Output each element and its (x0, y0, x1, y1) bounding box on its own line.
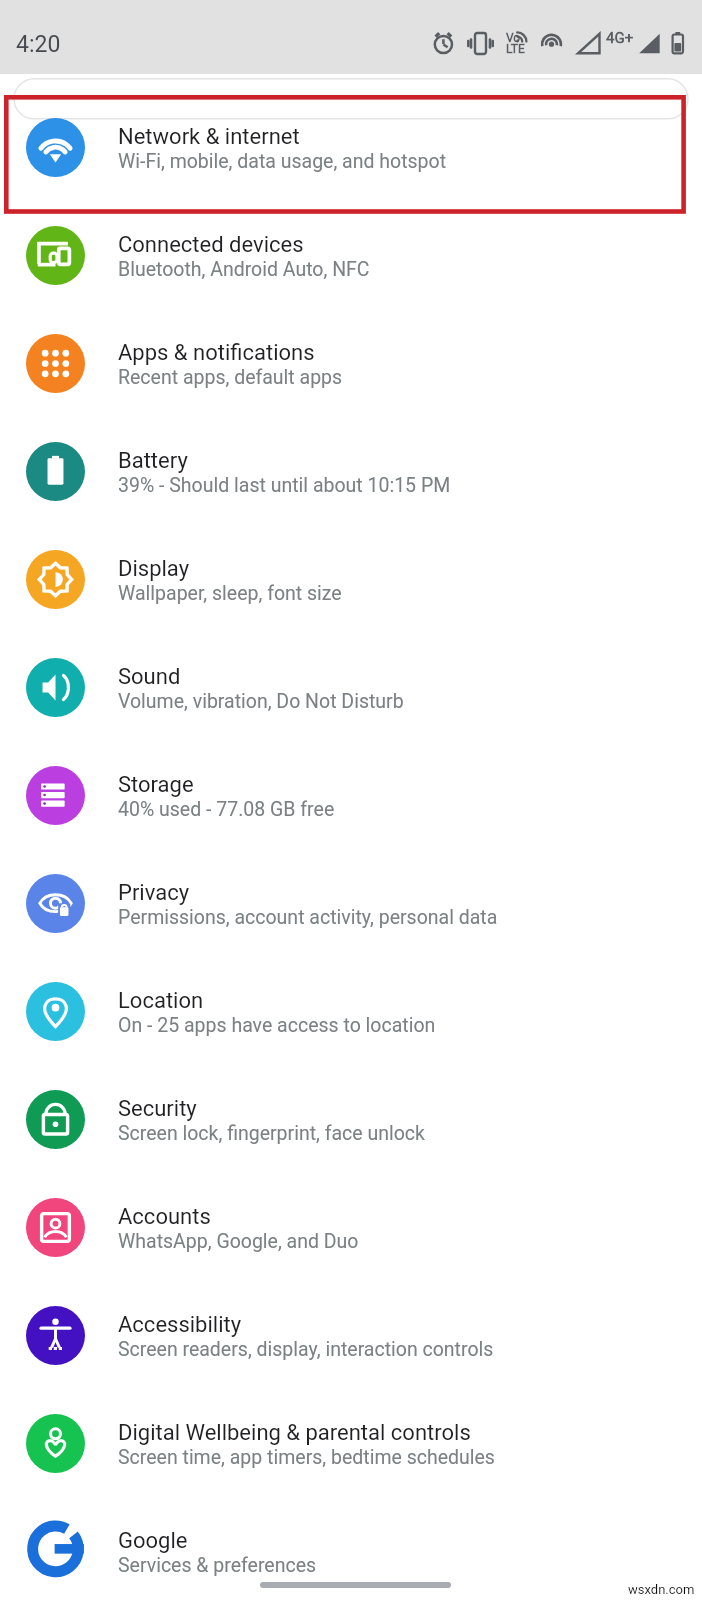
staticText: 4:20 (16, 31, 61, 58)
staticText: Services & preferences (118, 1554, 317, 1577)
staticText: Security (118, 1096, 197, 1122)
staticText: Network & internet (118, 124, 300, 150)
staticText: Privacy (118, 880, 190, 906)
staticText: Permissions, account activity, personal … (118, 906, 498, 929)
button[interactable]: Location (0, 959, 702, 1067)
staticText: Accessibility (118, 1312, 242, 1338)
staticText: Wi-Fi, mobile, data usage, and hotspot (118, 150, 447, 173)
button[interactable]: Apps & notifications (0, 311, 702, 419)
button[interactable]: Privacy (0, 851, 702, 959)
button[interactable]: Digital Wellbeing & parental controls (0, 1391, 702, 1499)
staticText: Vo (506, 31, 521, 45)
staticText: Screen readers, display, interaction con… (118, 1338, 494, 1361)
staticText: 40% used - 77.08 GB free (118, 798, 335, 821)
staticText: Apps & notifications (118, 340, 315, 366)
staticText: 39% - Should last until about 10:15 PM (118, 474, 451, 497)
staticText: Storage (118, 772, 194, 798)
button[interactable]: Accounts (0, 1175, 702, 1283)
button[interactable]: Battery (668, 26, 698, 56)
staticText: 4G+ (606, 29, 634, 47)
staticText: Recent apps, default apps (118, 366, 343, 389)
staticText: wsxdn.com (628, 1582, 695, 1597)
staticText: Digital Wellbeing & parental controls (118, 1420, 471, 1446)
button[interactable]: Sound (0, 635, 702, 743)
button[interactable]: Vibrate mode (464, 26, 494, 56)
button[interactable]: Security (0, 1067, 702, 1175)
staticText: Accounts (118, 1204, 211, 1230)
staticText: Screen lock, fingerprint, face unlock (118, 1122, 425, 1145)
button[interactable]: Home (235, 1567, 465, 1595)
button[interactable]: Network & internet (0, 95, 702, 203)
button[interactable]: Hotspot on (538, 26, 568, 56)
staticText: Location (118, 988, 204, 1014)
staticText: Display (118, 556, 190, 582)
button[interactable]: Storage (0, 743, 702, 851)
staticText: Battery (118, 448, 188, 474)
button[interactable]: Battery (0, 419, 702, 527)
button[interactable]: Display (0, 527, 702, 635)
button[interactable]: Connected devices (0, 203, 702, 311)
button[interactable]: Mobile signal SIM 2 (636, 26, 666, 56)
button[interactable]: Google (0, 1499, 702, 1600)
button[interactable]: VoLTE enabled (502, 26, 532, 56)
staticText: Google (118, 1528, 188, 1554)
button[interactable]: Alarm set (429, 26, 459, 56)
staticText: Wallpaper, sleep, font size (118, 582, 342, 605)
staticText: Sound (118, 664, 181, 690)
staticText: Connected devices (118, 232, 304, 258)
staticText: Volume, vibration, Do Not Disturb (118, 690, 404, 713)
staticText: WhatsApp, Google, and Duo (118, 1230, 359, 1253)
button[interactable]: Accessibility (0, 1283, 702, 1391)
staticText: Bluetooth, Android Auto, NFC (118, 258, 370, 281)
staticText: LTE (506, 42, 525, 56)
button[interactable]: Mobile signal SIM 1 (574, 26, 604, 56)
staticText: Screen time, app timers, bedtime schedul… (118, 1446, 495, 1469)
staticText: On - 25 apps have access to location (118, 1014, 436, 1037)
